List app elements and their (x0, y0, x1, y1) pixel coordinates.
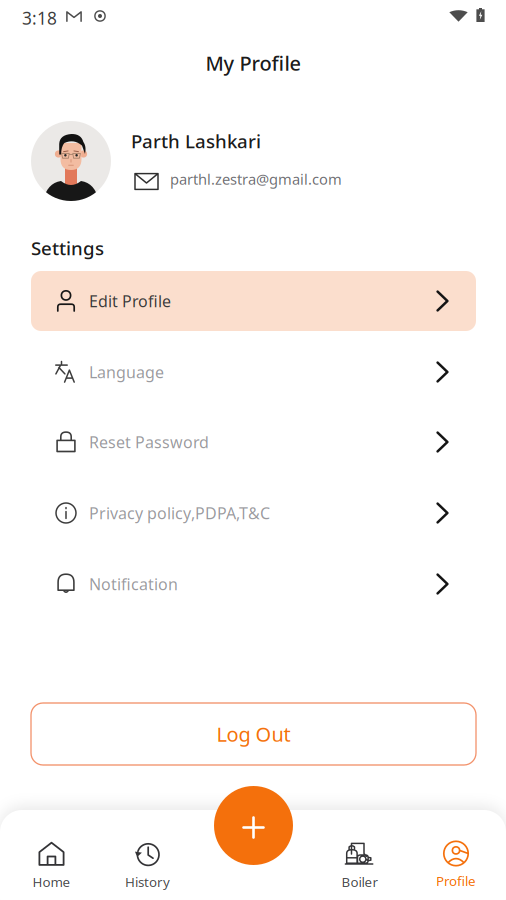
button[interactable]: Log Out (31, 703, 476, 765)
staticText: History (125, 873, 170, 891)
button[interactable]: Notification (31, 554, 476, 614)
staticText: 3:18 (22, 6, 57, 29)
button[interactable]: Language (31, 342, 476, 402)
staticText: Privacy policy,PDPA,T&C (89, 502, 270, 524)
staticText: Parth Lashkari (131, 129, 261, 153)
button[interactable]: Profile (408, 810, 504, 900)
staticText: Language (89, 361, 164, 383)
button[interactable]: Privacy policy,PDPA,T&C (31, 483, 476, 543)
staticText: Reset Password (89, 431, 209, 453)
staticText: Boiler (341, 873, 378, 891)
button[interactable]: Edit Profile (31, 271, 476, 331)
button[interactable]: Add (214, 786, 293, 865)
staticText: Edit Profile (89, 290, 171, 312)
staticText: Home (32, 873, 70, 891)
staticText: Notification (89, 573, 178, 595)
button[interactable]: Boiler (312, 810, 408, 900)
button[interactable]: History (99, 810, 195, 900)
staticText: parthl.zestra@gmail.com (170, 169, 342, 189)
staticText: Settings (31, 236, 104, 260)
staticText: My Profile (205, 50, 300, 76)
staticText: Log Out (216, 721, 290, 747)
button[interactable]: Home (3, 810, 99, 900)
staticText: Profile (436, 872, 476, 890)
button[interactable]: Reset Password (31, 412, 476, 472)
